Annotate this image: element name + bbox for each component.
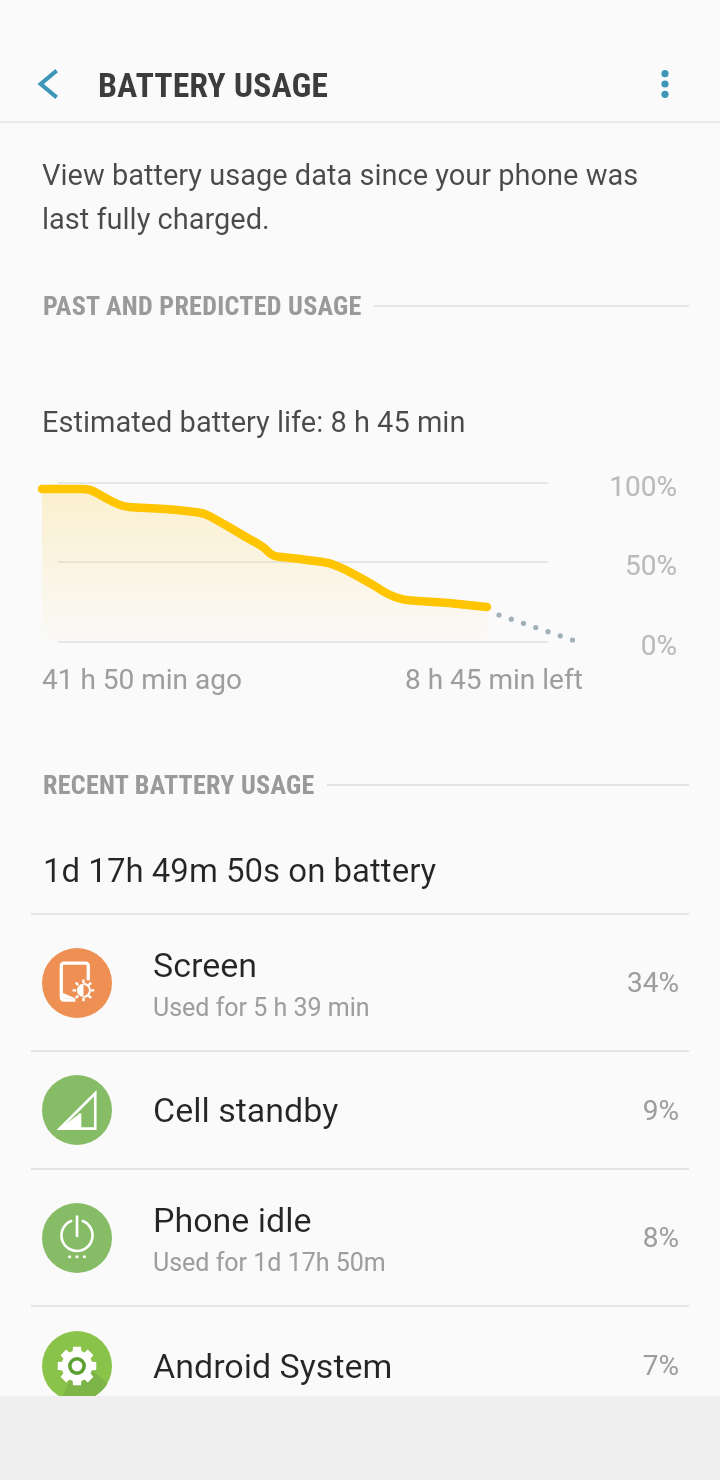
staticText: Used for 5 h 39 min xyxy=(153,993,370,1022)
staticText: BATTERY USAGE xyxy=(98,65,328,105)
staticText: 8% xyxy=(642,1221,679,1254)
staticText: Cell standby xyxy=(153,1090,339,1130)
staticText: PAST AND PREDICTED USAGE xyxy=(43,291,362,321)
staticText: Screen xyxy=(153,945,258,985)
button[interactable]: More options xyxy=(637,56,693,112)
staticText: Estimated battery life: 8 h 45 min xyxy=(42,405,466,439)
button[interactable]: Cell standby xyxy=(0,1052,720,1168)
staticText: 0% xyxy=(537,629,677,662)
staticText: 34% xyxy=(627,966,679,999)
staticText: 41 h 50 min ago xyxy=(42,663,242,696)
staticText: 7% xyxy=(642,1349,679,1382)
staticText: RECENT BATTERY USAGE xyxy=(43,770,315,800)
staticText: 100% xyxy=(537,470,677,503)
button[interactable]: Screen xyxy=(0,915,720,1050)
button[interactable]: Android System xyxy=(0,1307,720,1424)
staticText: Used for 1d 17h 50m xyxy=(153,1248,386,1277)
staticText: 9% xyxy=(642,1094,679,1127)
staticText: Phone idle xyxy=(153,1200,312,1240)
button[interactable]: Phone idle xyxy=(0,1170,720,1305)
staticText: View battery usage data since your phone… xyxy=(42,158,678,236)
staticText: 8 h 45 min left xyxy=(405,663,583,696)
staticText: Android System xyxy=(153,1346,393,1386)
button[interactable]: Navigate up xyxy=(20,56,76,112)
staticText: 50% xyxy=(537,549,677,582)
staticText: 1d 17h 49m 50s on battery xyxy=(43,851,437,890)
